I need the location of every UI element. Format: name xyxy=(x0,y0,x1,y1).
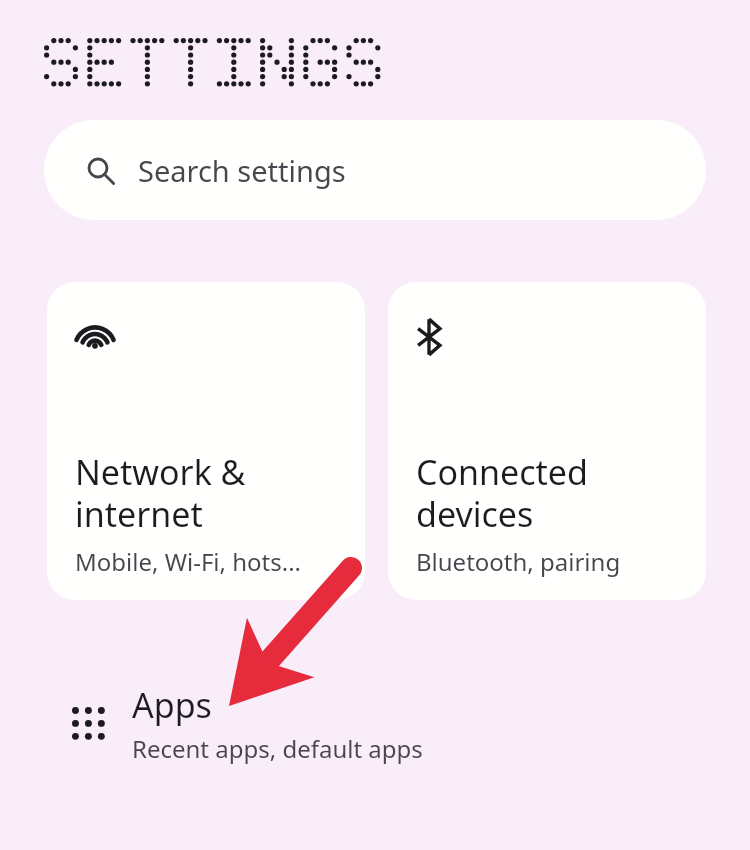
other: Connected devices xyxy=(416,318,442,356)
other: Network and internet xyxy=(75,318,115,350)
staticText: Recent apps, default apps xyxy=(132,732,423,765)
staticText: Search settings xyxy=(138,151,346,190)
button[interactable]: Search settings xyxy=(44,120,706,220)
staticText: Network & internet xyxy=(75,449,246,537)
staticText: Mobile, Wi-Fi, hots... xyxy=(75,545,302,578)
button[interactable]: Network and internet xyxy=(47,282,365,600)
staticText: Apps xyxy=(132,682,212,728)
other: Apps xyxy=(72,707,105,740)
staticText: Connected devices xyxy=(416,449,588,537)
staticText: Bluetooth, pairing xyxy=(416,545,621,578)
button[interactable]: Apps xyxy=(44,682,706,765)
button[interactable]: Connected devices xyxy=(388,282,706,600)
